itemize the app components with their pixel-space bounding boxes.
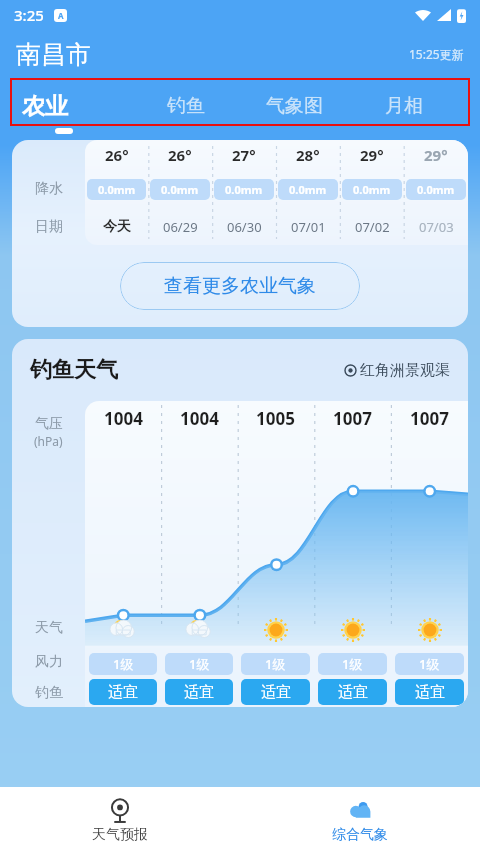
staticText: 日期	[35, 218, 63, 236]
staticText: 06/30	[227, 218, 262, 236]
staticText: 26°	[168, 145, 192, 165]
staticText: 0.0mm	[98, 182, 136, 197]
staticText: 1004	[104, 407, 143, 430]
staticText: 0.0mm	[161, 182, 199, 197]
button[interactable]: 综合气象	[240, 787, 480, 853]
staticText: 天气预报	[92, 826, 148, 844]
staticText: 1005	[256, 407, 295, 430]
staticText: 0.0mm	[353, 182, 391, 197]
button[interactable]: 天气预报	[0, 787, 240, 853]
staticText: 风力	[35, 653, 63, 671]
staticText: 1007	[333, 407, 372, 430]
staticText: 气压	[35, 415, 63, 433]
staticText: 29°	[424, 145, 448, 165]
staticText: 29°	[360, 145, 384, 165]
staticText: 气象图	[266, 94, 323, 118]
staticText: 1级	[342, 655, 363, 673]
staticText: (hPa)	[34, 433, 63, 449]
staticText: 天气	[35, 619, 63, 637]
staticText: 07/02	[355, 218, 390, 236]
button[interactable]: 钓鱼	[131, 78, 240, 134]
staticText: 适宜	[184, 683, 214, 702]
staticText: A	[58, 10, 64, 21]
staticText: 1007	[410, 407, 449, 430]
staticText: 钓鱼	[167, 94, 205, 118]
staticText: 3:25	[14, 5, 44, 25]
button[interactable]: 月相	[349, 78, 458, 134]
staticText: 28°	[296, 145, 320, 165]
staticText: 1004	[180, 407, 219, 430]
staticText: 15:25更新	[409, 46, 464, 62]
staticText: 查看更多农业气象	[164, 274, 316, 298]
staticText: 农业	[22, 92, 68, 121]
staticText: 0.0mm	[417, 182, 455, 197]
staticText: 月相	[385, 94, 423, 118]
staticText: 适宜	[415, 683, 445, 702]
staticText: 钓鱼天气	[30, 356, 118, 384]
staticText: 适宜	[108, 683, 138, 702]
staticText: 07/01	[291, 218, 326, 236]
staticText: 1级	[189, 655, 210, 673]
staticText: 南昌市	[16, 39, 91, 70]
button[interactable]: 农业	[22, 78, 131, 134]
staticText: 07/03	[419, 218, 454, 236]
staticText: 适宜	[261, 683, 291, 702]
staticText: 26°	[105, 145, 129, 165]
staticText: 红角洲景观渠	[360, 361, 450, 380]
button[interactable]: 红角洲景观渠	[344, 361, 450, 380]
staticText: 1级	[113, 655, 134, 673]
staticText: 今天	[103, 218, 131, 236]
staticText: 降水	[35, 180, 63, 198]
staticText: 27°	[232, 145, 256, 165]
button[interactable]: 查看更多农业气象	[120, 262, 360, 310]
staticText: 1级	[419, 655, 440, 673]
staticText: 综合气象	[332, 826, 388, 844]
staticText: 06/29	[163, 218, 198, 236]
staticText: 0.0mm	[225, 182, 263, 197]
button[interactable]: 气象图	[240, 78, 349, 134]
staticText: 1级	[265, 655, 286, 673]
staticText: 0.0mm	[289, 182, 327, 197]
staticText: 适宜	[338, 683, 368, 702]
staticText: 钓鱼	[35, 684, 63, 702]
